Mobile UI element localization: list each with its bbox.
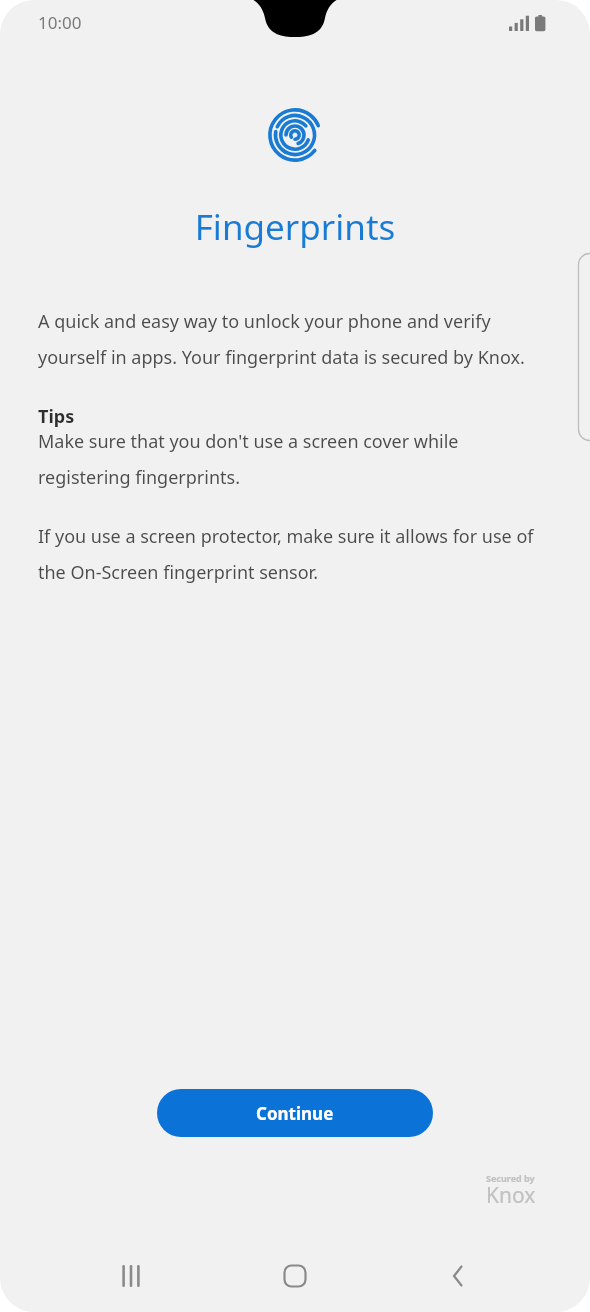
staticText: 10:00 xyxy=(38,11,82,34)
staticText: If you use a screen protector, make sure… xyxy=(38,524,552,585)
button[interactable]: Back xyxy=(411,1240,507,1312)
staticText: Fingerprints xyxy=(0,203,590,251)
staticText: A quick and easy way to unlock your phon… xyxy=(38,309,552,370)
button[interactable]: Home xyxy=(247,1240,343,1312)
staticText: Secured by xyxy=(486,1172,535,1184)
staticText: Make sure that you don't use a screen co… xyxy=(38,429,552,490)
staticText: Knox xyxy=(486,1181,536,1210)
staticText: Continue xyxy=(256,1102,334,1125)
button[interactable]: Recents xyxy=(83,1240,179,1312)
button[interactable]: Continue xyxy=(157,1089,433,1137)
staticText: Tips xyxy=(38,404,75,429)
